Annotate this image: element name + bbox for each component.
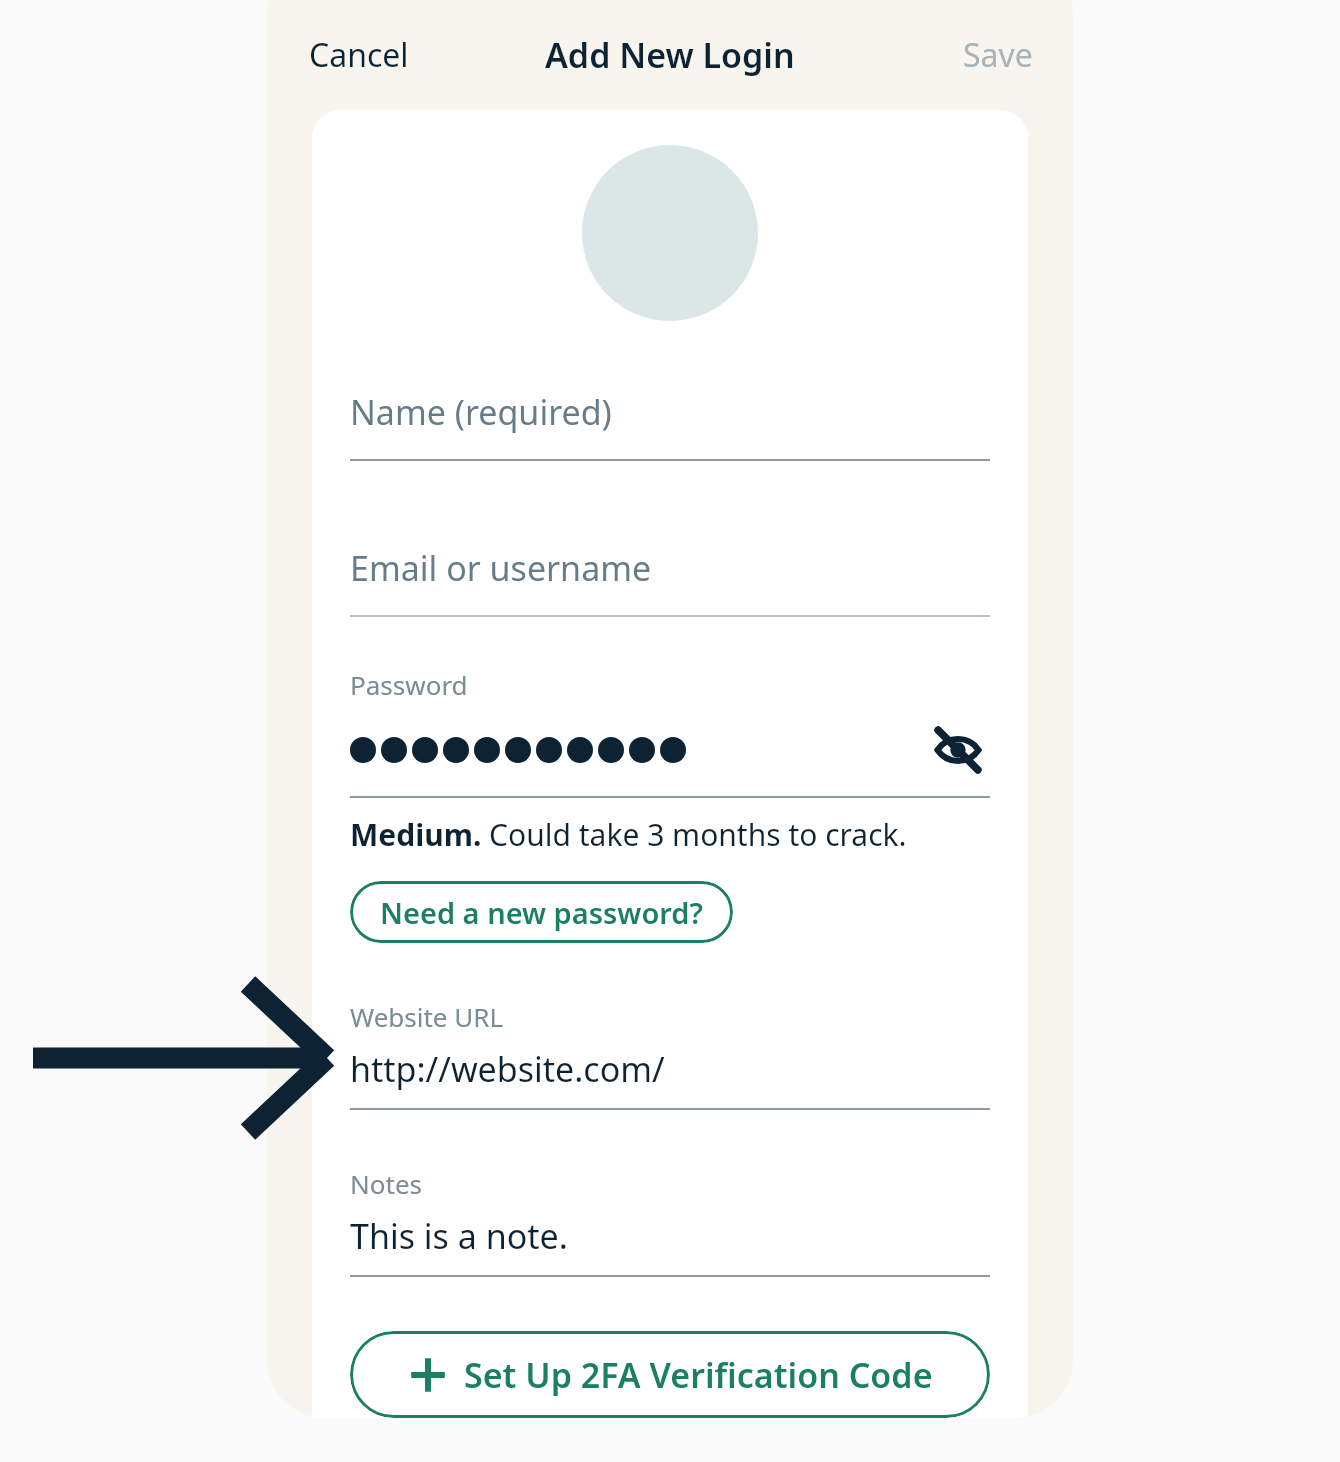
button[interactable]: Need a new password? [350,881,733,943]
staticText: Save [963,33,1033,77]
button[interactable]: Cancel [289,21,429,89]
staticText: This is a note. [350,1213,568,1259]
staticText: http://website.com/ [350,1046,665,1092]
button[interactable]: Save [945,21,1051,89]
button[interactable]: Choose login icon [582,145,758,321]
button[interactable]: Show password [926,718,990,782]
staticText: Add New Login [545,32,795,78]
staticText: Website URL [350,999,504,1034]
staticText: Need a new password? [380,893,703,932]
staticText: Email or username [350,545,652,591]
staticText: Notes [350,1166,422,1201]
staticText: Set Up 2FA Verification Code [464,1352,933,1398]
staticText: Cancel [309,33,409,77]
staticText: Name (required) [350,389,612,435]
button[interactable]: Set Up 2FA Verification Code [350,1331,990,1418]
staticText: Password [350,667,468,702]
staticText: Medium. Could take 3 months to crack. [350,814,907,855]
